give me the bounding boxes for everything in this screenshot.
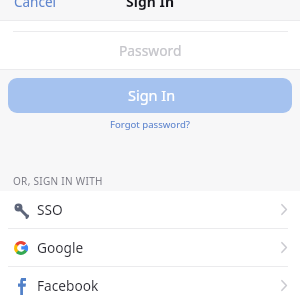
staticText: Forgot password?	[110, 118, 190, 131]
button[interactable]: Cancel	[6, 0, 65, 10]
button[interactable]: Forgot password?	[104, 115, 196, 134]
staticText: Cancel	[14, 0, 57, 7]
staticText: Sign In	[126, 0, 175, 11]
staticText: Google	[37, 238, 84, 257]
button[interactable]: Password field	[0, 32, 300, 69]
button[interactable]: Facebook	[0, 267, 300, 300]
staticText: Sign In	[128, 85, 176, 105]
button[interactable]: Google	[0, 229, 300, 266]
staticText: Facebook	[37, 276, 99, 295]
button[interactable]: SSO	[0, 191, 300, 228]
staticText: Password	[119, 41, 182, 60]
staticText: SSO	[37, 200, 63, 219]
button[interactable]: Sign In	[8, 78, 292, 113]
staticText: OR, SIGN IN WITH	[13, 174, 103, 188]
